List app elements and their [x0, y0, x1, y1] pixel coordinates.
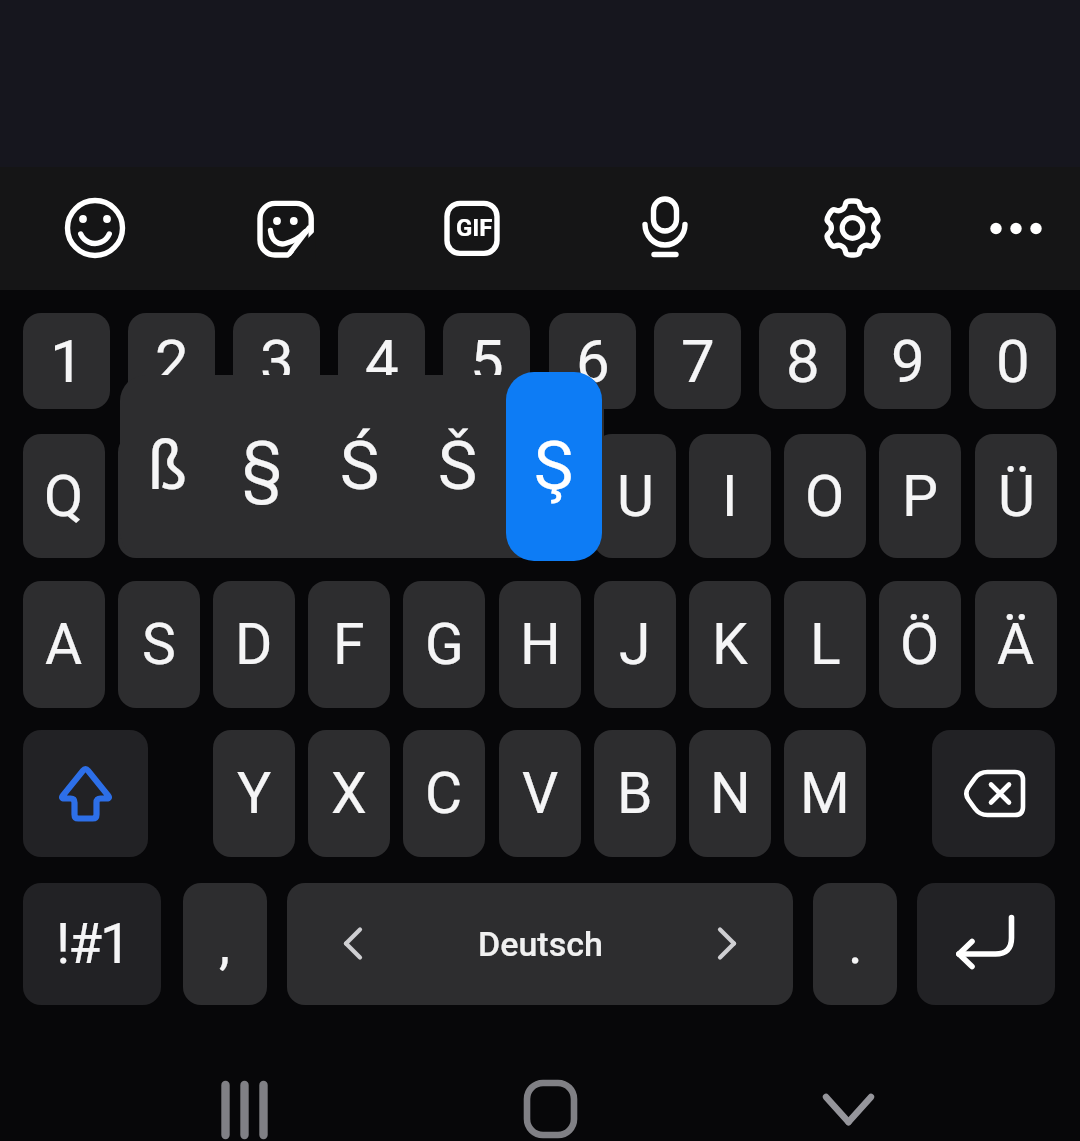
button[interactable]: S [118, 581, 200, 708]
button[interactable]: GIF [424, 178, 524, 278]
button[interactable]: 7 [654, 313, 741, 409]
button[interactable]: M [784, 730, 866, 857]
button[interactable]: Ö [879, 581, 961, 708]
button[interactable]: 6 [549, 313, 636, 409]
button[interactable]: 4 [338, 313, 425, 409]
button[interactable]: A [23, 581, 105, 708]
staticText: 9 [891, 326, 925, 396]
button[interactable]: O [784, 434, 866, 558]
staticText: N [710, 760, 751, 827]
button[interactable]: 1 [23, 313, 110, 409]
button[interactable]: G [403, 581, 485, 708]
staticText: P [902, 463, 938, 530]
button[interactable] [235, 178, 335, 278]
button[interactable]: D [213, 581, 295, 708]
button[interactable]: N [689, 730, 771, 857]
staticText: J [619, 611, 651, 678]
button[interactable]: Y [213, 730, 295, 857]
button[interactable]: H [499, 581, 581, 708]
button[interactable]: , [183, 883, 267, 1005]
staticText: 3 [260, 326, 294, 396]
button[interactable] [615, 178, 715, 278]
staticText: L [810, 611, 841, 678]
staticText: 6 [576, 326, 610, 396]
button[interactable] [932, 730, 1055, 857]
button[interactable]: ß [121, 375, 215, 558]
button[interactable] [965, 178, 1065, 278]
button[interactable]: 2 [128, 313, 215, 409]
button[interactable]: V [499, 730, 581, 857]
staticText: 1 [50, 326, 84, 396]
button[interactable]: 5 [443, 313, 530, 409]
button[interactable]: 0 [969, 313, 1056, 409]
staticText: Ś [340, 428, 380, 505]
staticText: W [134, 463, 185, 530]
staticText: , [219, 911, 231, 977]
button[interactable]: B [594, 730, 676, 857]
staticText: H [520, 611, 561, 678]
button[interactable]: § [215, 375, 309, 558]
staticText: G [425, 611, 464, 678]
staticText: Ö [900, 611, 940, 678]
staticText: M [800, 760, 850, 827]
button[interactable] [480, 1050, 600, 1141]
button[interactable]: Q [23, 434, 105, 558]
staticText: 5 [470, 326, 504, 396]
button[interactable]: 9 [864, 313, 951, 409]
staticText: O [805, 463, 845, 530]
button[interactable] [917, 883, 1055, 1005]
button[interactable]: W [118, 434, 200, 558]
staticText: K [712, 611, 748, 678]
button[interactable]: P [879, 434, 961, 558]
staticText: X [331, 760, 367, 827]
button[interactable] [45, 178, 145, 278]
button[interactable]: C [403, 730, 485, 857]
staticText: 7 [681, 326, 715, 396]
button[interactable] [183, 1050, 303, 1141]
button[interactable]: Ş [506, 372, 602, 561]
button[interactable]: Ś [313, 375, 407, 558]
button[interactable]: R [308, 434, 390, 558]
staticText: E [238, 463, 271, 530]
button[interactable]: L [784, 581, 866, 708]
staticText: T [427, 463, 462, 530]
button[interactable] [802, 178, 902, 278]
button[interactable]: F [308, 581, 390, 708]
staticText: Deutsch [478, 924, 603, 964]
button[interactable]: K [689, 581, 771, 708]
staticText: § [242, 428, 283, 505]
staticText: B [617, 760, 653, 827]
staticText: Š [438, 428, 478, 505]
button[interactable]: U [594, 434, 676, 558]
button[interactable]: Ä [975, 581, 1057, 708]
staticText: GIF [456, 214, 493, 242]
button[interactable] [23, 730, 148, 857]
staticText: C [425, 760, 463, 827]
staticText: Q [44, 463, 84, 530]
button[interactable]: I [689, 434, 771, 558]
staticText: U [617, 463, 654, 530]
button[interactable]: Deutsch [287, 883, 793, 1005]
button[interactable] [785, 1050, 912, 1141]
staticText: 2 [155, 326, 189, 396]
staticText: . [848, 911, 863, 977]
button[interactable]: Z [499, 434, 581, 558]
staticText: !#1 [56, 912, 129, 976]
button[interactable]: X [308, 730, 390, 857]
staticText: ß [148, 428, 188, 505]
button[interactable]: . [813, 883, 897, 1005]
button[interactable]: J [594, 581, 676, 708]
button[interactable]: E [213, 434, 295, 558]
button[interactable]: 8 [759, 313, 846, 409]
button[interactable]: !#1 [23, 883, 161, 1005]
staticText: 0 [996, 326, 1030, 396]
button[interactable]: Ü [975, 434, 1057, 558]
staticText: R [331, 463, 367, 530]
staticText: 8 [786, 326, 820, 396]
staticText: Ş [534, 428, 574, 505]
staticText: S [142, 611, 176, 678]
button[interactable]: Š [411, 375, 505, 558]
button[interactable]: T [403, 434, 485, 558]
staticText: V [522, 760, 559, 827]
button[interactable]: 3 [233, 313, 320, 409]
